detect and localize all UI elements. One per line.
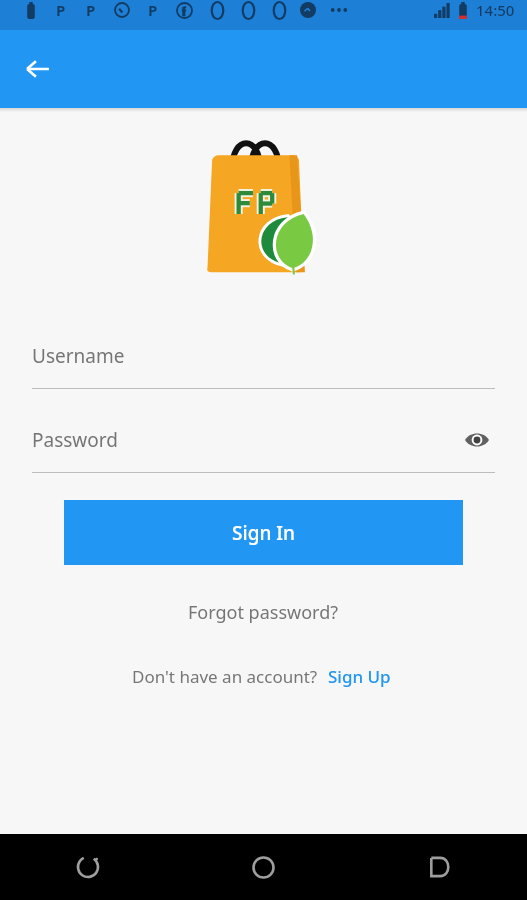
button[interactable]: Sign In <box>64 500 463 565</box>
staticText: Password <box>32 427 118 453</box>
button[interactable]: Back <box>14 45 62 93</box>
button[interactable]: Back <box>0 834 175 900</box>
button[interactable]: Password <box>32 417 495 473</box>
button[interactable]: Show password <box>459 422 495 458</box>
staticText: Forgot password? <box>188 600 339 625</box>
button[interactable]: Home <box>175 834 351 900</box>
button[interactable]: Username <box>32 333 495 389</box>
staticText: Don't have an account? <box>132 665 318 688</box>
button[interactable]: Forgot password? <box>176 594 351 631</box>
staticText: Username <box>32 343 125 369</box>
staticText: Sign In <box>232 520 295 546</box>
staticText: Sign Up <box>328 665 391 688</box>
button[interactable]: Sign Up <box>324 661 395 692</box>
staticText: P <box>148 0 158 20</box>
staticText: P <box>56 0 66 20</box>
button[interactable]: Recent apps <box>351 834 527 900</box>
staticText: 14:50 <box>476 0 515 20</box>
staticText: P <box>86 0 96 20</box>
